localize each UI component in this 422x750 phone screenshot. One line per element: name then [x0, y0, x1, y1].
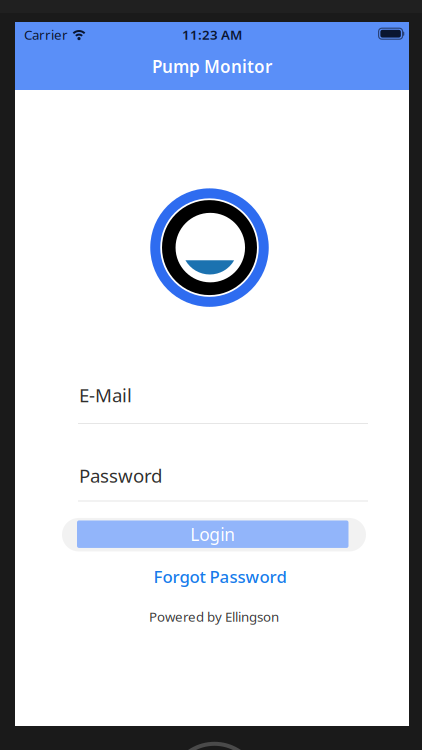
- staticText: Pump Monitor: [152, 55, 272, 78]
- staticText: Forgot Password: [153, 566, 286, 587]
- textField[interactable]: E-Mail: [79, 383, 409, 407]
- button[interactable]: Forgot Password: [153, 566, 286, 587]
- textField[interactable]: Password: [79, 463, 409, 488]
- staticText: Powered by Ellingson: [149, 608, 279, 625]
- staticText: E-Mail: [79, 383, 132, 407]
- staticText: Password: [79, 463, 162, 488]
- staticText: 11:23 AM: [182, 26, 242, 43]
- staticText: Login: [190, 523, 235, 546]
- staticText: Carrier: [24, 26, 68, 43]
- button[interactable]: Login: [62, 518, 366, 551]
